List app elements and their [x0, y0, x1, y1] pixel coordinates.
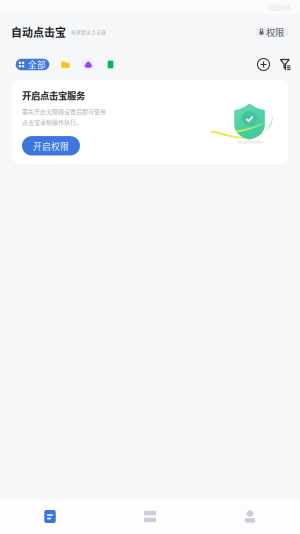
button[interactable]: 云端: [82, 58, 95, 71]
staticText: 开启权限: [33, 139, 69, 152]
button[interactable]: 我的: [200, 500, 300, 533]
button[interactable]: 权限: [255, 27, 289, 37]
button[interactable]: 记录: [100, 500, 200, 533]
button[interactable]: 筛选: [277, 56, 294, 73]
button[interactable]: 新建: [255, 56, 272, 73]
staticText: 全部: [28, 58, 46, 71]
staticText: 需先开启无障碍设置后即可使用 点击宝录制操作执行。: [22, 107, 106, 127]
button[interactable]: 开启权限: [22, 136, 80, 155]
staticText: 中国移动: [266, 3, 290, 11]
button[interactable]: 脚本库: [105, 59, 116, 70]
staticText: 按键精灵点击器: [71, 28, 106, 35]
staticText: 权限: [266, 25, 284, 39]
button[interactable]: 全部: [16, 59, 49, 70]
button[interactable]: 文件夹: [59, 58, 72, 71]
staticText: 开启点击宝服务: [22, 88, 85, 102]
staticText: 自动点击宝: [11, 24, 66, 40]
button[interactable]: 脚本: [0, 500, 100, 533]
